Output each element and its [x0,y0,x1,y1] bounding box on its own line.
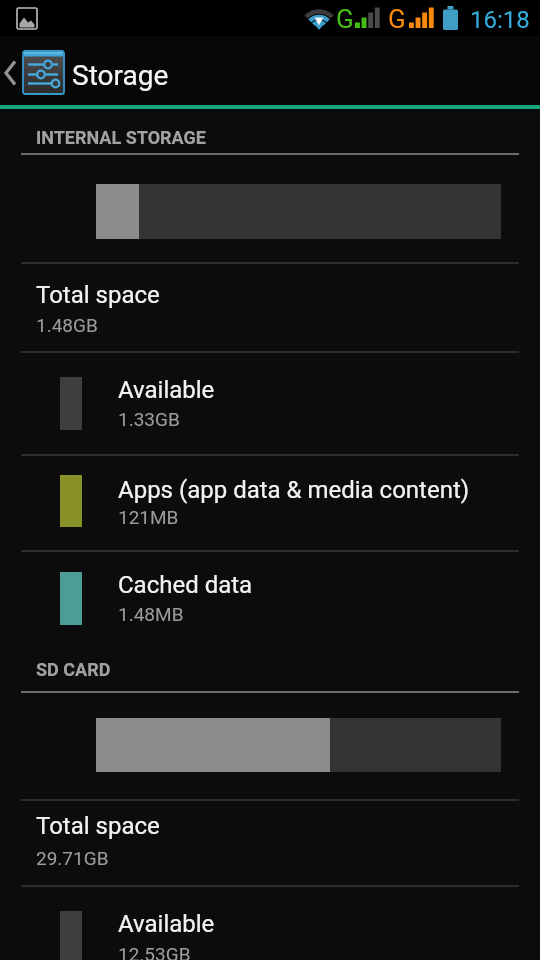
staticText: 1.48GB [36,314,98,336]
staticText: Apps (app data & media content) [118,476,470,504]
staticText: G [388,4,406,34]
button[interactable]: Cached data [0,552,540,647]
staticText: INTERNAL STORAGE [36,127,206,148]
staticText: 1.48MB [118,603,184,625]
staticText: SD CARD [36,659,111,680]
staticText: Storage [72,59,169,92]
staticText: Cached data [118,571,253,599]
staticText: Available [118,910,215,938]
button[interactable]: Apps (app data & media content) [0,456,540,550]
staticText: 29.71GB [36,847,109,869]
button[interactable]: Available [0,887,540,960]
staticText: 121MB [118,506,179,528]
staticText: G [336,4,354,34]
staticText: Available [118,376,215,404]
button[interactable]: Total space [0,264,540,351]
staticText: Total space [36,812,160,840]
staticText: 16:18 [470,6,530,34]
staticText: 1.33GB [118,408,180,430]
button[interactable]: Total space [0,801,540,885]
button[interactable]: Available [0,353,540,454]
staticText: Total space [36,281,160,309]
button[interactable]: Storage [0,36,280,105]
staticText: 12.53GB [118,943,191,960]
